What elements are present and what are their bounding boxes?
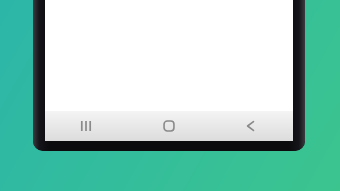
button[interactable]: Back	[210, 111, 293, 141]
button[interactable]: Recent apps	[45, 111, 127, 141]
button[interactable]: Home	[127, 111, 210, 141]
